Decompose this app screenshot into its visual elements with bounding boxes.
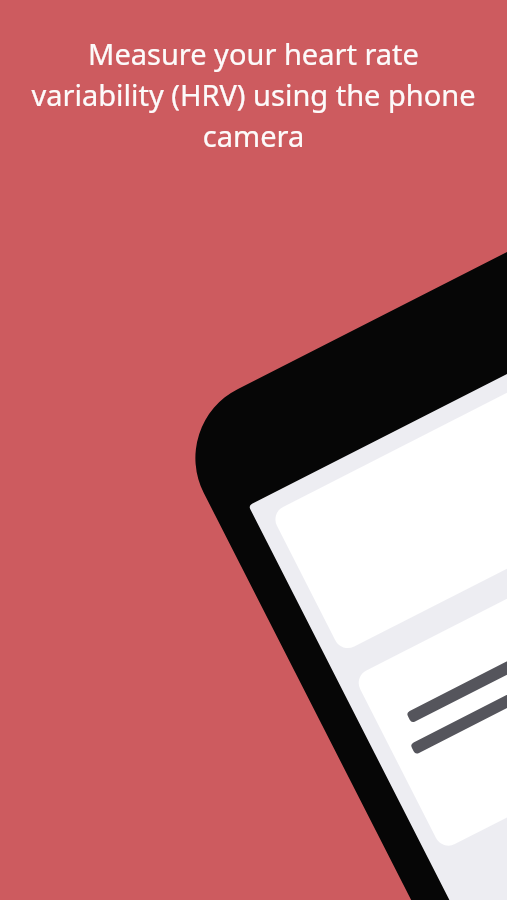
button[interactable]: Measure your heart rate variability (HRV… — [26, 34, 481, 156]
other: Phone showing the HRV feature screen — [0, 0, 507, 900]
staticText: Measure your heart rate variability (HRV… — [26, 34, 481, 156]
